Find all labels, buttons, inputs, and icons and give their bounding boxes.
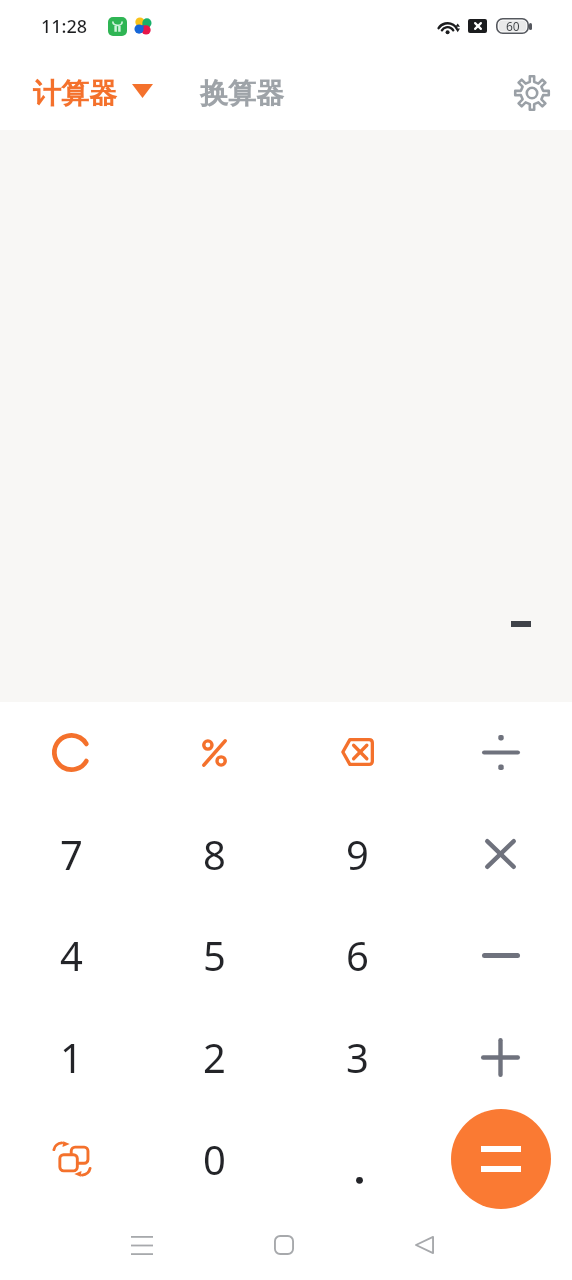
button[interactable]: Divide: [429, 702, 572, 803]
button[interactable]: Equals: [429, 1108, 572, 1210]
button[interactable]: 8: [143, 803, 286, 904]
staticText: 7: [60, 827, 83, 881]
button[interactable]: 1: [0, 1006, 143, 1108]
staticText: 2: [203, 1030, 226, 1084]
staticText: 60: [506, 18, 520, 34]
button[interactable]: 换算器: [176, 56, 308, 130]
button[interactable]: Convert units: [0, 1108, 143, 1210]
button[interactable]: Plus: [429, 1006, 572, 1108]
staticText: 3: [346, 1030, 369, 1084]
button[interactable]: 9: [286, 803, 429, 904]
staticText: 6: [346, 928, 369, 982]
staticText: 1: [60, 1030, 83, 1084]
button[interactable]: 2: [143, 1006, 286, 1108]
staticText: 9: [346, 827, 369, 881]
button[interactable]: Clear: [0, 702, 143, 803]
button[interactable]: Settings: [505, 66, 559, 120]
button[interactable]: Percent: [143, 702, 286, 803]
button[interactable]: 7: [0, 803, 143, 904]
staticText: 计算器: [33, 76, 117, 111]
staticText: 换算器: [200, 76, 284, 111]
button[interactable]: Minus: [429, 904, 572, 1006]
staticText: 4: [60, 928, 83, 982]
button[interactable]: Multiply: [429, 803, 572, 904]
staticText: 5: [203, 928, 226, 982]
button[interactable]: 3: [286, 1006, 429, 1108]
button[interactable]: 6: [286, 904, 429, 1006]
staticText: 0: [203, 1132, 226, 1186]
staticText: 8: [203, 827, 226, 881]
button[interactable]: Back: [355, 1210, 497, 1280]
button[interactable]: Home: [213, 1210, 355, 1280]
button[interactable]: 计算器: [0, 56, 176, 130]
button[interactable]: Recent apps: [71, 1210, 213, 1280]
button[interactable]: Backspace: [286, 702, 429, 803]
button[interactable]: 4: [0, 904, 143, 1006]
button[interactable]: [286, 1108, 429, 1210]
button[interactable]: 0: [143, 1108, 286, 1210]
staticText: 11:28: [41, 14, 88, 39]
button[interactable]: 5: [143, 904, 286, 1006]
